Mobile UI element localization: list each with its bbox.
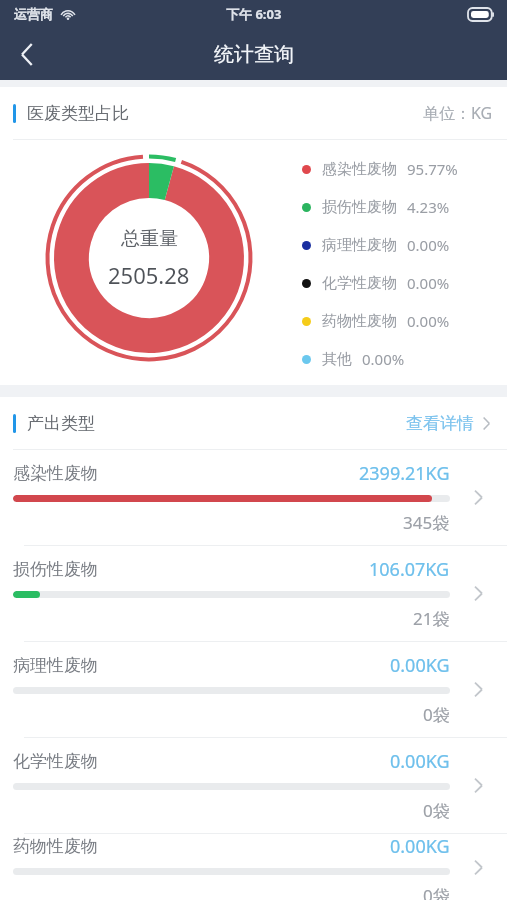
button[interactable]: 损伤性废物 [0, 546, 507, 641]
button[interactable]: 药物性废物 [0, 834, 507, 900]
staticText: 0.00% [407, 273, 450, 293]
staticText: 产出类型 [27, 413, 95, 434]
staticText: 药物性废物 [322, 312, 397, 331]
staticText: 化学性废物 [13, 751, 98, 772]
button[interactable]: 查看详情 [404, 407, 493, 440]
staticText: 2399.21KG [359, 461, 450, 486]
staticText: 0.00% [407, 235, 450, 255]
staticText: 4.23% [407, 197, 450, 217]
staticText: 0.00% [407, 311, 450, 331]
staticText: 0.00KG [390, 653, 450, 678]
staticText: 统计查询 [214, 42, 294, 67]
staticText: 345袋 [403, 511, 450, 534]
staticText: 0袋 [423, 884, 450, 900]
staticText: 2505.28 [108, 260, 190, 290]
staticText: 单位：KG [423, 102, 493, 124]
staticText: 0.00KG [390, 749, 450, 774]
staticText: 总重量 [121, 227, 178, 251]
staticText: 其他 [322, 350, 352, 369]
staticText: 药物性废物 [13, 836, 98, 857]
staticText: 损伤性废物 [13, 559, 98, 580]
staticText: 21袋 [413, 607, 450, 630]
staticText: 查看详情 [406, 413, 474, 434]
staticText: 106.07KG [369, 557, 450, 582]
staticText: 化学性废物 [322, 274, 397, 293]
staticText: 95.77% [407, 159, 458, 179]
staticText: 0.00% [362, 349, 405, 369]
staticText: 病理性废物 [13, 655, 98, 676]
staticText: 感染性废物 [13, 463, 98, 484]
button[interactable]: 病理性废物 [0, 642, 507, 737]
button[interactable]: 化学性废物 [0, 738, 507, 833]
staticText: 下午 6:03 [226, 5, 282, 23]
staticText: 0袋 [423, 799, 450, 822]
staticText: 0袋 [423, 703, 450, 726]
staticText: 病理性废物 [322, 236, 397, 255]
button[interactable]: 感染性废物 [0, 450, 507, 545]
button[interactable]: Back [0, 28, 52, 80]
staticText: 运营商 [14, 6, 53, 22]
staticText: 感染性废物 [322, 160, 397, 179]
staticText: 医废类型占比 [27, 103, 129, 124]
staticText: 损伤性废物 [322, 198, 397, 217]
staticText: 0.00KG [390, 834, 450, 859]
